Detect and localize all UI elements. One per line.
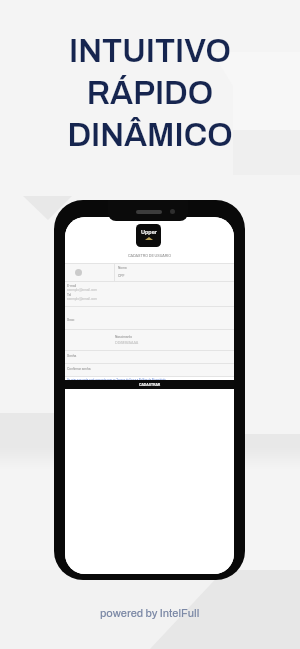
staticText: CPF xyxy=(118,274,125,277)
staticText: Nome xyxy=(118,266,127,269)
staticText: Confirmar senha xyxy=(67,367,91,370)
staticText: INTUITIVO RÁPIDO DINÂMICO xyxy=(0,33,300,153)
staticText: Upper xyxy=(141,229,157,235)
staticText: CADASTRAR xyxy=(139,383,161,387)
staticText: Ao criar sua conta você concorda com os … xyxy=(67,379,166,382)
staticText: Nascimento xyxy=(115,335,133,338)
staticText: Senha xyxy=(67,354,77,357)
staticText: Sexo xyxy=(67,318,75,321)
button[interactable]: CADASTRAR xyxy=(65,380,234,389)
staticText: exemplo@email.com xyxy=(67,297,98,300)
staticText: powered by IntelFull xyxy=(100,607,200,619)
staticText: DD/MM/AAAA xyxy=(115,341,139,345)
staticText: exemplo@email.com xyxy=(67,288,98,291)
staticText: Tel xyxy=(67,293,72,296)
staticText: CADASTRO DE USUÁRIO xyxy=(65,254,234,258)
staticText: E-mail xyxy=(67,284,77,287)
